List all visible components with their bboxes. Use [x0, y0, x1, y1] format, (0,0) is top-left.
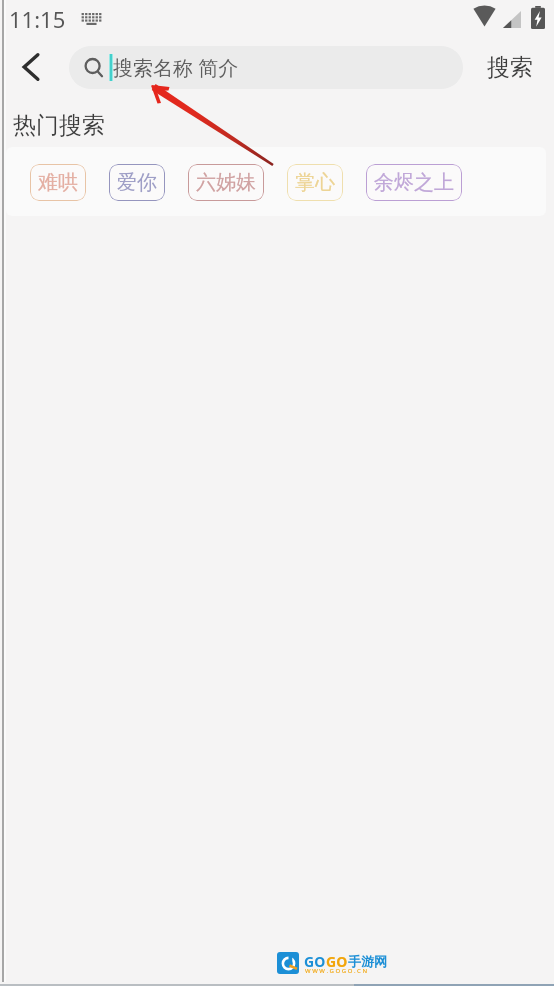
button[interactable]: 搜索名称 简介: [69, 46, 463, 89]
staticText: W W W . G O G O . C N: [305, 967, 368, 975]
staticText: 掌心: [295, 170, 335, 195]
button[interactable]: 爱你: [109, 164, 165, 201]
staticText: 六姊妹: [196, 170, 256, 195]
button[interactable]: 难哄: [30, 164, 86, 201]
staticText: GO: [304, 952, 326, 971]
button[interactable]: Back: [8, 44, 54, 90]
button[interactable]: 搜索: [470, 44, 550, 90]
staticText: 搜索: [487, 53, 533, 82]
staticText: 11:15: [9, 4, 66, 34]
staticText: 余烬之上: [374, 170, 454, 195]
button[interactable]: 掌心: [287, 164, 343, 201]
staticText: 难哄: [38, 170, 78, 195]
staticText: 热门搜索: [13, 111, 105, 140]
button[interactable]: 余烬之上: [366, 164, 462, 201]
staticText: 手游网: [348, 953, 387, 969]
staticText: GO: [326, 952, 348, 971]
staticText: 搜索名称 简介: [113, 54, 239, 81]
button[interactable]: 六姊妹: [188, 164, 264, 201]
staticText: 爱你: [117, 170, 157, 195]
